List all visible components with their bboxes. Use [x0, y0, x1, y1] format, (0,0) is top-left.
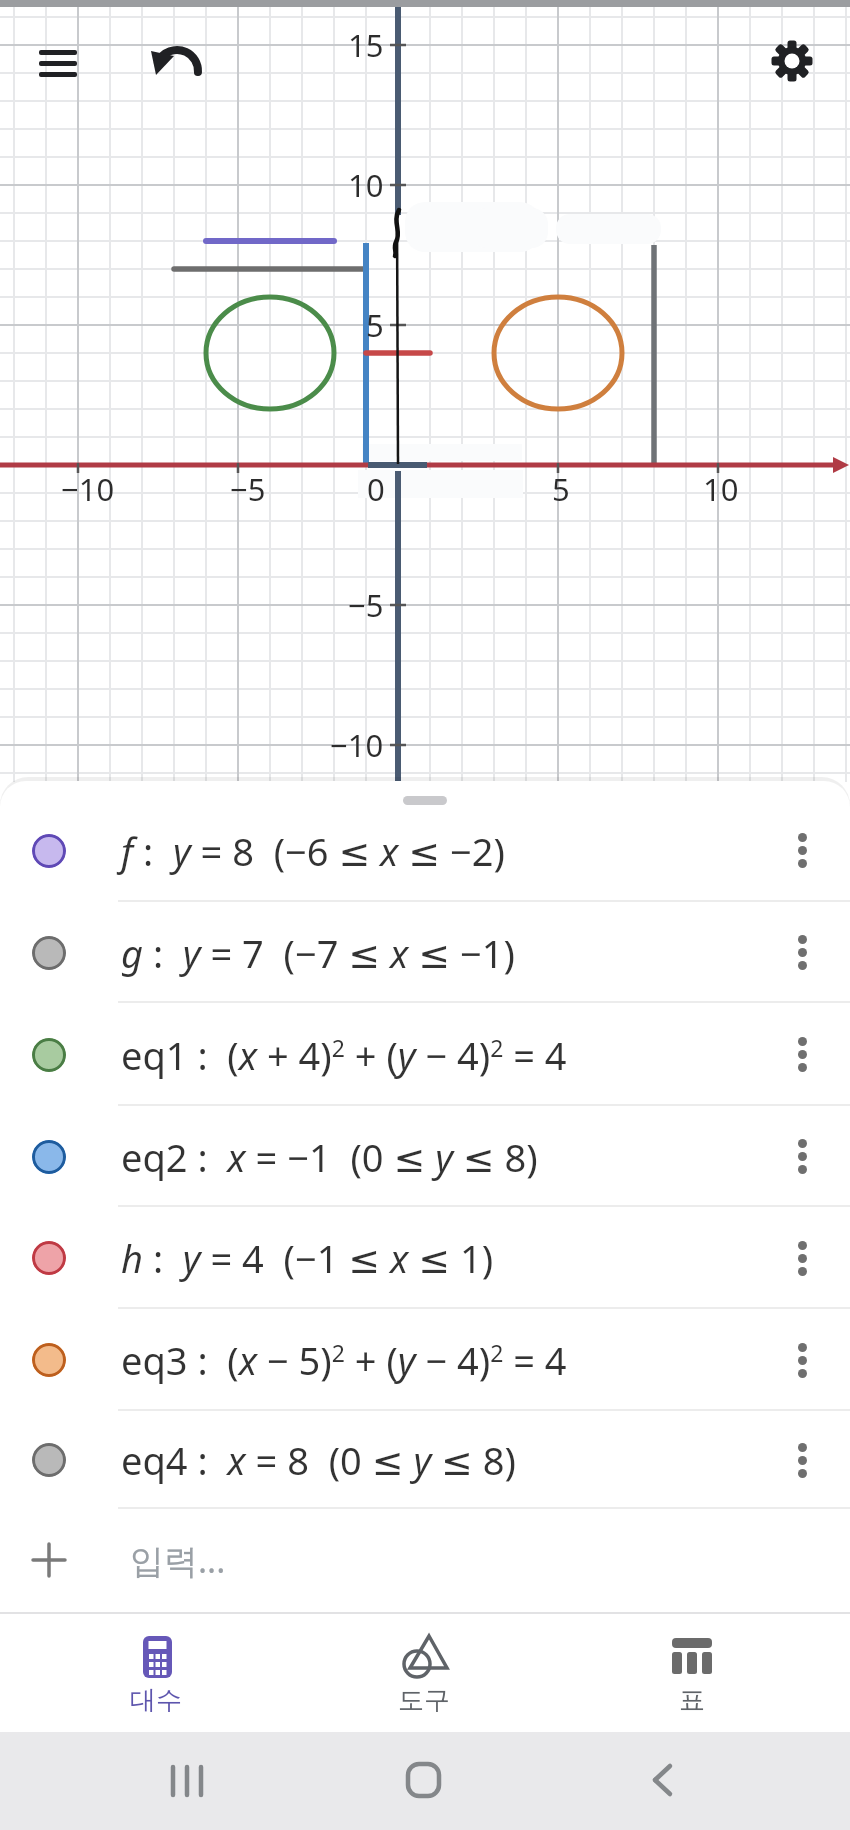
staticText: 입력...: [130, 1537, 226, 1583]
staticText: 10: [703, 468, 739, 510]
button[interactable]: 입력...: [0, 1509, 850, 1611]
staticText: 5: [552, 468, 570, 510]
button[interactable]: eq4 : x = 8 (0 ≤ y ≤ 8): [0, 1411, 850, 1509]
button[interactable]: eq1 : (x + 4)2 + (y − 4)2 = 4: [0, 1003, 850, 1106]
staticText: −5: [230, 468, 266, 510]
button[interactable]: eq3 : (x − 5)2 + (y − 4)2 = 4: [0, 1309, 850, 1411]
staticText: eq2 : x = −1 (0 ≤ y ≤ 8): [121, 1131, 538, 1183]
button[interactable]: [798, 1037, 807, 1072]
button[interactable]: [140, 38, 210, 88]
staticText: 0: [367, 468, 385, 510]
button[interactable]: f : y = 8 (−6 ≤ x ≤ −2): [0, 781, 850, 902]
staticText: 도구: [398, 1684, 450, 1714]
button[interactable]: [798, 1139, 807, 1174]
staticText: eq3 : (x − 5)2 + (y − 4)2 = 4: [121, 1334, 567, 1386]
button[interactable]: [798, 1343, 807, 1378]
staticText: 대수: [130, 1684, 182, 1714]
staticText: 5: [366, 304, 384, 346]
button[interactable]: [30, 40, 86, 86]
staticText: eq1 : (x + 4)2 + (y − 4)2 = 4: [121, 1029, 567, 1081]
button[interactable]: 대수: [96, 1612, 216, 1730]
staticText: g : y = 7 (−7 ≤ x ≤ −1): [121, 927, 515, 979]
staticText: 10: [348, 164, 384, 206]
button[interactable]: [768, 38, 816, 86]
button[interactable]: [394, 1750, 454, 1810]
button[interactable]: [157, 1750, 217, 1810]
button[interactable]: [798, 1443, 807, 1478]
button[interactable]: [634, 1750, 694, 1810]
button[interactable]: 도구: [364, 1612, 484, 1730]
staticText: eq4 : x = 8 (0 ≤ y ≤ 8): [121, 1434, 516, 1486]
staticText: h : y = 4 (−1 ≤ x ≤ 1): [121, 1232, 494, 1284]
staticText: f : y = 8 (−6 ≤ x ≤ −2): [121, 825, 505, 877]
button[interactable]: [798, 1241, 807, 1276]
staticText: −10: [61, 468, 115, 510]
button[interactable]: g : y = 7 (−7 ≤ x ≤ −1): [0, 902, 850, 1003]
button[interactable]: eq2 : x = −1 (0 ≤ y ≤ 8): [0, 1106, 850, 1207]
staticText: −10: [330, 724, 384, 766]
button[interactable]: [798, 935, 807, 970]
staticText: 표: [679, 1684, 705, 1714]
button[interactable]: 표: [632, 1612, 752, 1730]
button[interactable]: h : y = 4 (−1 ≤ x ≤ 1): [0, 1207, 850, 1309]
staticText: −5: [348, 584, 384, 626]
button[interactable]: [798, 833, 807, 868]
staticText: 15: [348, 24, 384, 66]
